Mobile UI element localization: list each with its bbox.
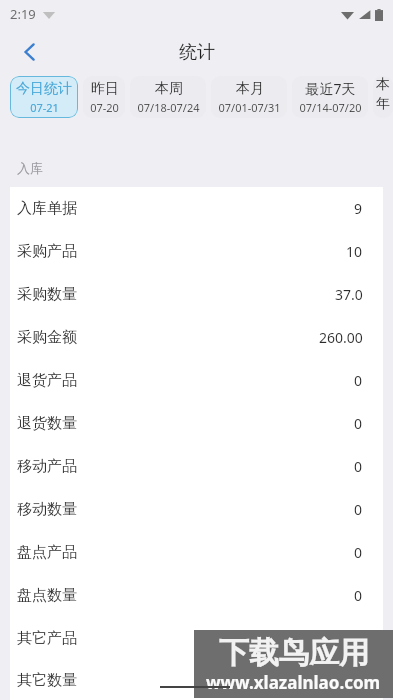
staticText: 盘点数量 [17,586,77,605]
button[interactable]: 其它产品 [10,617,383,660]
button[interactable]: 退货数量 [10,402,383,445]
staticText: 入库单据 [17,199,77,218]
staticText: 本月 [236,80,264,98]
staticText: 37.0 [335,285,363,304]
button[interactable]: 最近7天 [292,76,368,118]
button[interactable]: 采购产品 [10,230,383,273]
staticText: 0 [354,629,363,648]
staticText: 采购数量 [17,285,77,304]
staticText: 采购产品 [17,242,77,261]
staticText: 下载鸟应用 [219,634,369,672]
staticText: 采购金额 [17,328,77,347]
staticText: 0 [354,457,363,476]
button[interactable]: 盘点产品 [10,531,383,574]
button[interactable]: 盘点数量 [10,574,383,617]
staticText: 0 [354,500,363,519]
staticText: 0 [354,671,363,690]
button[interactable]: 采购金额 [10,316,383,359]
button[interactable]: 其它数量 [10,660,383,700]
button[interactable]: 昨日 [83,76,125,118]
button[interactable]: 退货产品 [10,359,383,402]
button[interactable]: 入库单据 [10,187,383,230]
staticText: 最近7天 [305,79,356,98]
button[interactable]: 本月 [211,76,287,118]
staticText: 260.00 [319,328,363,347]
staticText: 移动数量 [17,500,77,519]
staticText: 统计 [179,41,215,64]
button[interactable]: 移动数量 [10,488,383,531]
staticText: 其它数量 [17,671,77,690]
staticText: 9 [354,199,363,218]
staticText: 0 [354,586,363,605]
staticText: 昨日 [91,80,119,98]
staticText: 10 [346,242,363,261]
staticText: www.xlazalnlao.com [206,671,381,694]
staticText: 2:19 [10,5,36,23]
staticText: 本年 [373,76,393,112]
button[interactable]: 本周 [130,76,206,118]
staticText: 退货产品 [17,371,77,390]
staticText: 其它产品 [17,629,77,648]
staticText: 移动产品 [17,457,77,476]
staticText: 07/01-07/31 [218,100,281,115]
staticText: 今日统计 [16,80,72,98]
button[interactable]: 返回 [8,30,52,74]
staticText: 盘点产品 [17,543,77,562]
staticText: 0 [354,414,363,433]
staticText: 07-20 [90,100,119,115]
button[interactable]: 采购数量 [10,273,383,316]
staticText: 07/14-07/20 [299,100,362,115]
staticText: 退货数量 [17,414,77,433]
staticText: 0 [354,543,363,562]
staticText: 07-21 [30,100,59,115]
button[interactable]: 移动产品 [10,445,383,488]
staticText: 07/18-07/24 [137,100,200,115]
button[interactable]: 本年 [373,76,393,118]
staticText: 本周 [155,80,183,98]
button[interactable]: 今日统计 [10,76,78,118]
staticText: 0 [354,371,363,390]
staticText: 入库 [17,160,43,176]
